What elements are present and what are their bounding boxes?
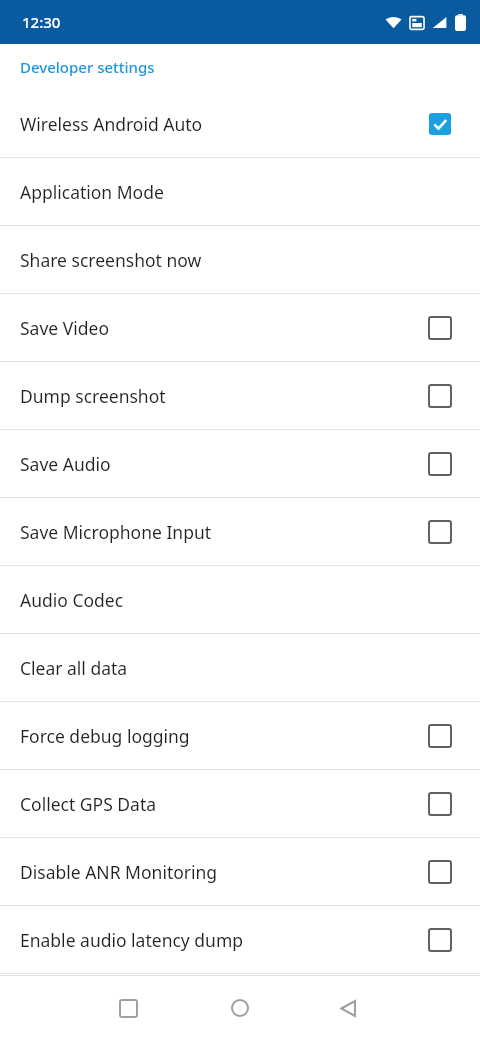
button[interactable]: Clear all data <box>0 634 480 702</box>
staticText: Clear all data <box>20 656 452 680</box>
staticText: 12:30 <box>22 12 61 32</box>
staticText: Enable audio latency dump <box>20 928 428 952</box>
staticText: Collect GPS Data <box>20 792 428 816</box>
button[interactable]: Force debug logging <box>0 702 480 770</box>
staticText: Force debug logging <box>20 724 428 748</box>
button[interactable]: Dump screenshot <box>0 362 480 430</box>
button[interactable]: Home <box>212 980 268 1036</box>
button[interactable]: Back <box>320 980 376 1036</box>
staticText: Wireless Android Auto <box>20 112 428 136</box>
staticText: Application Mode <box>20 180 452 204</box>
button[interactable]: Disable ANR Monitoring <box>0 838 480 906</box>
button[interactable]: Save Video <box>0 294 480 362</box>
staticText: Save Video <box>20 316 428 340</box>
button[interactable]: Collect GPS Data <box>0 770 480 838</box>
button[interactable]: Application Mode <box>0 158 480 226</box>
staticText: Dump screenshot <box>20 384 428 408</box>
staticText: Share screenshot now <box>20 248 452 272</box>
staticText: Disable ANR Monitoring <box>20 860 428 884</box>
button[interactable]: Share screenshot now <box>0 226 480 294</box>
button[interactable]: Audio Codec <box>0 566 480 634</box>
button[interactable]: Wireless Android Auto <box>0 90 480 158</box>
button[interactable]: Enable audio latency dump <box>0 906 480 974</box>
staticText: Save Microphone Input <box>20 520 428 544</box>
button[interactable]: Save Audio <box>0 430 480 498</box>
staticText: Audio Codec <box>20 588 452 612</box>
staticText: Save Audio <box>20 452 428 476</box>
button[interactable]: Save Microphone Input <box>0 498 480 566</box>
button[interactable]: Recent apps <box>100 980 156 1036</box>
staticText: Developer settings <box>20 57 155 77</box>
